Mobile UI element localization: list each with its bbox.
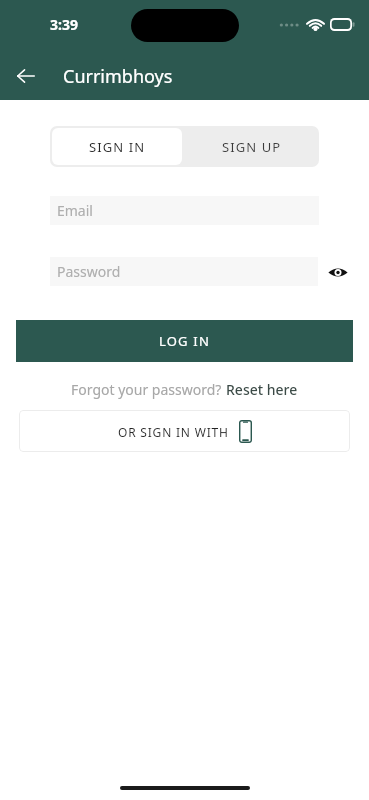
staticText: SIGN UP xyxy=(222,138,282,156)
button[interactable]: SIGN IN xyxy=(52,128,182,165)
staticText: Email xyxy=(57,201,93,220)
button[interactable]: Show password xyxy=(326,260,350,284)
staticText: SIGN IN xyxy=(89,138,146,156)
button[interactable]: LOG IN xyxy=(16,320,353,362)
button[interactable]: Back xyxy=(6,56,46,96)
button[interactable]: Email xyxy=(50,196,319,225)
button[interactable]: Password xyxy=(50,257,318,286)
staticText: Password xyxy=(57,262,121,281)
staticText: Reset here xyxy=(226,380,298,399)
staticText: Forgot your password? xyxy=(71,380,226,399)
button[interactable]: OR SIGN IN WITH xyxy=(19,410,350,452)
button[interactable]: Reset here xyxy=(226,380,298,399)
staticText: LOG IN xyxy=(159,332,211,350)
staticText: OR SIGN IN WITH xyxy=(118,424,229,440)
staticText: Currimbhoys xyxy=(63,64,173,89)
staticText: 3:39 xyxy=(50,15,78,34)
button[interactable]: SIGN UP xyxy=(184,126,319,167)
